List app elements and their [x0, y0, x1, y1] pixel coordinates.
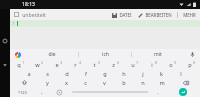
staticText: z: [112, 61, 115, 69]
staticText: .: [157, 88, 159, 95]
staticText: y: [46, 79, 49, 87]
button[interactable]: o: [162, 60, 181, 69]
button[interactable]: Back: [0, 60, 10, 70]
staticText: 18:13: [22, 1, 35, 8]
staticText: ,: [41, 88, 43, 95]
button[interactable]: ?123: [10, 87, 34, 97]
button[interactable]: e: [48, 60, 67, 69]
staticText: i: [151, 61, 153, 69]
button[interactable]: s: [38, 69, 57, 78]
button[interactable]: Voice input: [184, 49, 200, 60]
staticText: g: [103, 70, 107, 78]
button[interactable]: u: [124, 60, 143, 69]
staticText: c: [84, 79, 87, 87]
staticText: v: [103, 79, 106, 87]
button[interactable]: Enter: [166, 87, 200, 97]
staticText: x: [65, 79, 68, 87]
staticText: u: [131, 61, 135, 69]
staticText: ?123: [18, 90, 27, 95]
staticText: mit: [154, 51, 162, 58]
staticText: d: [65, 70, 69, 78]
staticText: 1: [22, 61, 24, 65]
staticText: 3: [60, 61, 62, 65]
button[interactable]: l: [171, 69, 190, 78]
staticText: 6: [117, 61, 119, 65]
button[interactable]: n: [133, 78, 152, 87]
staticText: die: [48, 51, 56, 58]
staticText: s: [46, 70, 49, 78]
button[interactable]: ich: [79, 49, 131, 60]
staticText: unbetitelt: [22, 11, 46, 18]
staticText: 4: [79, 61, 81, 65]
staticText: BEARBEITEN: [145, 12, 172, 18]
button[interactable]: Home: [0, 36, 10, 46]
button[interactable]: i: [143, 60, 162, 69]
staticText: e: [55, 61, 59, 69]
button[interactable]: ,: [34, 87, 50, 97]
button[interactable]: g: [95, 69, 114, 78]
button[interactable]: Emoji: [50, 87, 69, 97]
staticText: ich: [102, 51, 109, 58]
staticText: h: [122, 70, 126, 78]
button[interactable]: x: [57, 78, 76, 87]
button[interactable]: BEARBEITEN: [137, 12, 173, 18]
button[interactable]: j: [133, 69, 152, 78]
button[interactable]: b: [114, 78, 133, 87]
staticText: p: [188, 61, 192, 69]
staticText: 9: [174, 61, 176, 65]
button[interactable]: c: [76, 78, 95, 87]
staticText: w: [35, 61, 40, 69]
button[interactable]: r: [67, 60, 86, 69]
button[interactable]: MEHR: [182, 12, 197, 18]
staticText: q: [17, 61, 21, 69]
button[interactable]: Space: [69, 87, 150, 97]
button[interactable]: q: [10, 60, 29, 69]
staticText: m: [159, 79, 165, 87]
staticText: b: [122, 79, 126, 87]
button[interactable]: h: [114, 69, 133, 78]
button[interactable]: v: [95, 78, 114, 87]
button[interactable]: die: [26, 49, 78, 60]
staticText: j: [142, 70, 144, 78]
staticText: 7: [136, 61, 138, 65]
button[interactable]: DATEI: [111, 12, 133, 18]
staticText: 8: [155, 61, 157, 65]
staticText: o: [169, 61, 173, 69]
button[interactable]: k: [152, 69, 171, 78]
staticText: r: [74, 61, 77, 69]
button[interactable]: .: [150, 87, 166, 97]
staticText: 2: [41, 61, 43, 65]
staticText: DATEI: [119, 12, 132, 18]
button[interactable]: unbetitelt: [14, 11, 46, 18]
staticText: f: [85, 70, 87, 78]
button[interactable]: t: [86, 60, 105, 69]
staticText: 5: [98, 61, 100, 65]
button[interactable]: p: [181, 60, 200, 69]
button[interactable]: d: [57, 69, 76, 78]
button[interactable]: a: [19, 69, 38, 78]
button[interactable]: m: [152, 78, 171, 87]
staticText: n: [141, 79, 145, 87]
staticText: MEHR: [183, 12, 196, 18]
staticText: 1: [12, 21, 15, 26]
button[interactable]: z: [105, 60, 124, 69]
button[interactable]: Google: [10, 49, 26, 60]
staticText: l: [180, 70, 182, 78]
button[interactable]: Shift: [10, 78, 38, 87]
button[interactable]: Backspace: [171, 78, 200, 87]
button[interactable]: w: [29, 60, 48, 69]
staticText: a: [27, 70, 31, 78]
button[interactable]: y: [38, 78, 57, 87]
staticText: 0: [193, 61, 195, 65]
staticText: k: [160, 70, 163, 78]
staticText: t: [93, 61, 96, 69]
button[interactable]: mit: [132, 49, 184, 60]
button[interactable]: f: [76, 69, 95, 78]
